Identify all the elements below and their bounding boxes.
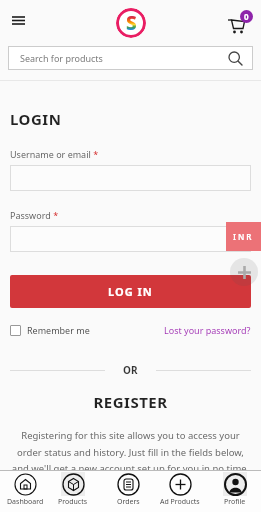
button[interactable]: Profile (207, 471, 261, 512)
button[interactable]: Dashboard (0, 471, 53, 512)
button[interactable]: S (116, 8, 146, 38)
staticText: Orders (117, 497, 140, 507)
staticText: Search for products (20, 52, 103, 64)
staticText: Dashboard (7, 497, 44, 507)
button[interactable]: Lost your password? (164, 324, 251, 336)
staticText: Username or email (10, 148, 91, 160)
staticText: 0 (244, 11, 249, 22)
button[interactable]: Ad Products (152, 471, 208, 512)
button[interactable]: Products (45, 471, 101, 512)
button[interactable]: Orders (100, 471, 156, 512)
staticText: Remember me (27, 324, 90, 336)
button[interactable]: LOG IN (10, 275, 251, 308)
staticText: Ad Products (160, 497, 200, 507)
button[interactable]: INR (226, 222, 261, 251)
staticText: LOGIN (10, 109, 62, 129)
staticText: Password (10, 209, 51, 221)
staticText: INR (233, 231, 254, 242)
button[interactable]: Remember me (10, 324, 90, 336)
staticText: Profile (224, 497, 246, 507)
staticText: Registering for this site allows you to … (8, 429, 253, 474)
staticText: * (51, 209, 59, 221)
staticText: Products (58, 497, 88, 507)
staticText: REGISTER (0, 392, 261, 412)
button[interactable] (7, 10, 29, 32)
button[interactable]: 0 (227, 10, 253, 36)
button[interactable] (230, 258, 258, 286)
button[interactable]: Search for products (8, 46, 253, 70)
staticText: * (91, 148, 99, 160)
staticText: OR (123, 363, 138, 377)
staticText: S (126, 10, 137, 36)
staticText: LOG IN (108, 284, 153, 299)
